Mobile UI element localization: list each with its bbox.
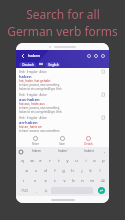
staticText: n xyxy=(81,178,84,183)
staticText: b xyxy=(72,178,75,183)
button[interactable]: More suggestions xyxy=(102,149,107,154)
button[interactable]: q xyxy=(17,156,27,165)
button[interactable]: Emoji xyxy=(18,149,23,154)
button[interactable]: z xyxy=(30,176,40,185)
button[interactable]: d xyxy=(41,166,50,175)
staticText: haben ist ein unregelmäßiges Verb xyxy=(19,87,62,91)
staticText: haben xyxy=(19,74,32,79)
button[interactable]: f xyxy=(50,166,59,175)
button[interactable]: Deutsch xyxy=(19,62,36,67)
button[interactable]: Search xyxy=(98,187,105,194)
staticText: German verb forms xyxy=(7,23,118,39)
staticText: Search for all xyxy=(26,6,100,22)
button[interactable]: l xyxy=(95,166,104,175)
staticText: y xyxy=(66,158,69,163)
staticText: Verb · Irregular · Active xyxy=(19,116,47,120)
staticText: haben ist ein unregelmäßiges Verb xyxy=(19,110,62,114)
staticText: aus·haben xyxy=(19,97,40,102)
staticText: q xyxy=(21,158,24,163)
button[interactable]: u xyxy=(72,156,81,165)
staticText: u xyxy=(75,158,78,163)
staticText: m xyxy=(90,178,94,183)
staticText: c xyxy=(54,178,56,183)
staticText: j xyxy=(81,168,83,173)
button[interactable]: Symbols xyxy=(17,186,32,195)
staticText: s xyxy=(35,168,37,173)
button[interactable]: Bookmark xyxy=(102,70,106,74)
button[interactable]: n xyxy=(78,176,87,185)
staticText: ↵ xyxy=(100,189,103,193)
staticText: Details xyxy=(84,142,93,146)
button[interactable]: v xyxy=(60,176,69,185)
button[interactable]: Save xyxy=(56,136,68,146)
button[interactable]: Shift xyxy=(17,176,30,185)
staticText: k xyxy=(89,168,92,173)
button[interactable]: haben' xyxy=(50,149,76,153)
button[interactable]: habest xyxy=(76,149,102,153)
staticText: ⌫ xyxy=(100,179,105,182)
button[interactable]: Back xyxy=(19,52,26,59)
button[interactable]: e xyxy=(36,156,45,165)
staticText: hat aus, hatte aus xyxy=(19,102,45,106)
staticText: ?123 xyxy=(21,189,28,193)
staticText: English xyxy=(48,63,59,67)
staticText: to have; possess, own something xyxy=(19,83,60,87)
button[interactable]: Comma xyxy=(32,186,41,195)
button[interactable]: c xyxy=(50,176,60,185)
button[interactable]: Swap languages xyxy=(39,62,43,66)
staticText: an·haben xyxy=(19,120,38,125)
button[interactable]: y xyxy=(63,156,72,165)
staticText: ⇧ xyxy=(22,179,25,182)
staticText: ☺ xyxy=(44,189,48,192)
button[interactable]: Share xyxy=(29,136,42,146)
staticText: hat, hatte, hat gehabt xyxy=(19,79,51,83)
staticText: Verb · Irregular · Active xyxy=(19,93,47,97)
staticText: Deutsch xyxy=(22,63,34,67)
staticText: z xyxy=(34,178,36,183)
button[interactable]: Backspace xyxy=(96,176,108,185)
button[interactable]: j xyxy=(77,166,86,175)
button[interactable]: haben xyxy=(23,149,50,153)
button[interactable]: a xyxy=(21,166,31,175)
staticText: to have; possess, own something xyxy=(19,106,60,110)
button[interactable]: b xyxy=(69,176,78,185)
button[interactable]: Verb · Irregular · Active xyxy=(19,93,106,114)
button[interactable]: Details xyxy=(81,136,96,146)
button[interactable]: Bookmark xyxy=(102,116,106,120)
staticText: haben xyxy=(28,53,41,58)
button[interactable]: g xyxy=(59,166,68,175)
button[interactable]: t xyxy=(54,156,63,165)
staticText: to have; possess, own something xyxy=(19,129,60,132)
staticText: t xyxy=(58,158,60,163)
button[interactable]: k xyxy=(86,166,95,175)
button[interactable]: p xyxy=(99,156,108,165)
button[interactable]: r xyxy=(45,156,54,165)
staticText: a xyxy=(25,168,28,173)
button[interactable]: Verb · Irregular · Active xyxy=(19,116,106,132)
staticText: f xyxy=(54,168,56,173)
button[interactable]: English xyxy=(46,62,60,67)
button[interactable]: Action xyxy=(99,52,106,59)
staticText: o xyxy=(93,158,96,163)
button[interactable]: m xyxy=(87,176,96,185)
button[interactable]: Action xyxy=(85,52,92,59)
button[interactable]: Emoji xyxy=(41,186,50,195)
staticText: v xyxy=(63,178,66,183)
button[interactable]: x xyxy=(40,176,50,185)
button[interactable]: Verb · Irregular · Active xyxy=(19,70,106,91)
button[interactable]: w xyxy=(27,156,36,165)
button[interactable]: Bookmark xyxy=(102,93,106,97)
button[interactable]: h xyxy=(68,166,77,175)
button[interactable]: i xyxy=(81,156,90,165)
staticText: w xyxy=(30,158,34,163)
staticText: d xyxy=(44,168,47,173)
staticText: , xyxy=(36,189,37,193)
staticText: l xyxy=(99,168,101,173)
button[interactable]: Action xyxy=(92,52,99,59)
staticText: hat an, hatte an xyxy=(19,125,42,129)
staticText: r xyxy=(49,158,51,163)
button[interactable]: s xyxy=(31,166,41,175)
button[interactable]: o xyxy=(90,156,99,165)
staticText: Verb · Irregular · Active xyxy=(19,70,47,74)
